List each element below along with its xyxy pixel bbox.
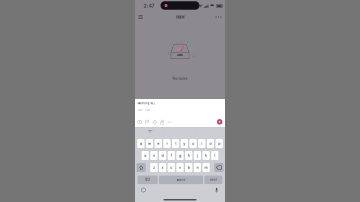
button[interactable]: Delete	[214, 163, 223, 172]
button[interactable]: z	[150, 163, 157, 172]
button[interactable]: Labels	[153, 120, 157, 125]
staticText: next	[210, 178, 217, 181]
staticText: m	[205, 165, 208, 170]
staticText: e	[157, 141, 159, 146]
button[interactable]: q	[137, 139, 144, 148]
button[interactable]: More actions	[168, 120, 171, 125]
staticText: f	[171, 153, 172, 158]
button[interactable]: c	[168, 163, 175, 172]
staticText: s	[153, 153, 155, 158]
button[interactable]: Menu	[135, 12, 146, 22]
staticText: l	[214, 153, 215, 158]
staticText: k	[205, 153, 207, 158]
staticText: g	[179, 153, 181, 158]
button[interactable]: v	[176, 163, 184, 172]
staticText: v	[179, 165, 181, 170]
button[interactable]: 123	[138, 175, 158, 184]
staticText: No tasks	[172, 76, 187, 81]
staticText: b	[188, 165, 190, 170]
button[interactable]: h	[185, 151, 192, 160]
button[interactable]: s	[150, 151, 157, 160]
staticText: j	[197, 153, 198, 158]
staticText: x	[162, 165, 164, 170]
button[interactable]: i	[198, 139, 205, 148]
button[interactable]: Schedule	[138, 120, 142, 125]
staticText: Meeting w/	[137, 102, 153, 105]
staticText: z	[153, 165, 155, 170]
staticText: space	[176, 178, 185, 181]
staticText: h	[188, 153, 190, 158]
button[interactable]: space	[159, 175, 203, 184]
button[interactable]: m	[202, 163, 210, 172]
button[interactable]: More options	[212, 12, 225, 22]
staticText: r	[166, 141, 167, 146]
staticText: y	[183, 141, 185, 146]
button[interactable]: n	[194, 163, 201, 172]
staticText: c	[170, 165, 172, 170]
button[interactable]: k	[202, 151, 210, 160]
button[interactable]: f	[168, 151, 175, 160]
button[interactable]: o	[207, 139, 214, 148]
button[interactable]: j	[194, 151, 201, 160]
button[interactable]: r	[163, 139, 171, 148]
staticText: 2:47	[143, 3, 154, 9]
button[interactable]: Shift	[136, 163, 146, 172]
staticText: a	[144, 153, 146, 158]
button[interactable]: x	[159, 163, 166, 172]
button[interactable]: w	[146, 139, 153, 148]
button[interactable]: t	[172, 139, 179, 148]
staticText: u	[192, 141, 194, 146]
button[interactable]: a	[142, 151, 149, 160]
button[interactable]: next	[204, 175, 222, 184]
button[interactable]: Dictate	[212, 186, 222, 194]
button[interactable]: l	[211, 151, 218, 160]
button[interactable]: d	[159, 151, 166, 160]
staticText: Inbox · Today	[137, 109, 150, 111]
staticText: n	[196, 165, 198, 170]
button[interactable]: Reminders	[160, 120, 164, 125]
staticText: Inbox	[175, 15, 184, 19]
staticText: i	[201, 141, 202, 146]
staticText: t	[175, 141, 176, 146]
button[interactable]: e	[155, 139, 162, 148]
staticText: “T”	[148, 130, 152, 134]
button[interactable]: b	[185, 163, 192, 172]
staticText: q	[140, 141, 142, 146]
staticText: d	[162, 153, 164, 158]
button[interactable]: g	[176, 151, 184, 160]
staticText: w	[148, 141, 151, 146]
button[interactable]: Add task	[217, 119, 222, 125]
button[interactable]: Emoji	[138, 186, 148, 194]
staticText: p	[218, 141, 220, 146]
staticText: o	[209, 141, 211, 146]
button[interactable]: p	[215, 139, 223, 148]
button[interactable]: Priority	[145, 120, 149, 125]
staticText: 123	[145, 178, 150, 181]
button[interactable]: u	[189, 139, 197, 148]
button[interactable]: y	[181, 139, 188, 148]
button[interactable]: “T”	[135, 127, 165, 137]
